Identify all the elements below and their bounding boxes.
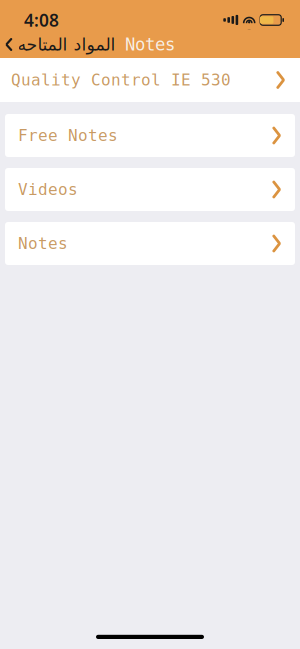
button[interactable]: Notes bbox=[5, 222, 295, 265]
button[interactable]: Quality Control IE 530 bbox=[0, 58, 300, 102]
staticText: Free Notes bbox=[18, 126, 118, 145]
staticText: المواد المتاحه bbox=[17, 35, 115, 54]
staticText: Notes bbox=[125, 35, 175, 54]
button[interactable]: Free Notes bbox=[5, 114, 295, 157]
staticText: Notes bbox=[18, 234, 68, 253]
button[interactable]: المواد المتاحه bbox=[0, 31, 121, 58]
staticText: 4:08 bbox=[24, 8, 59, 31]
staticText: Videos bbox=[18, 180, 78, 199]
button[interactable]: Videos bbox=[5, 168, 295, 211]
staticText: Quality Control IE 530 bbox=[11, 71, 231, 89]
